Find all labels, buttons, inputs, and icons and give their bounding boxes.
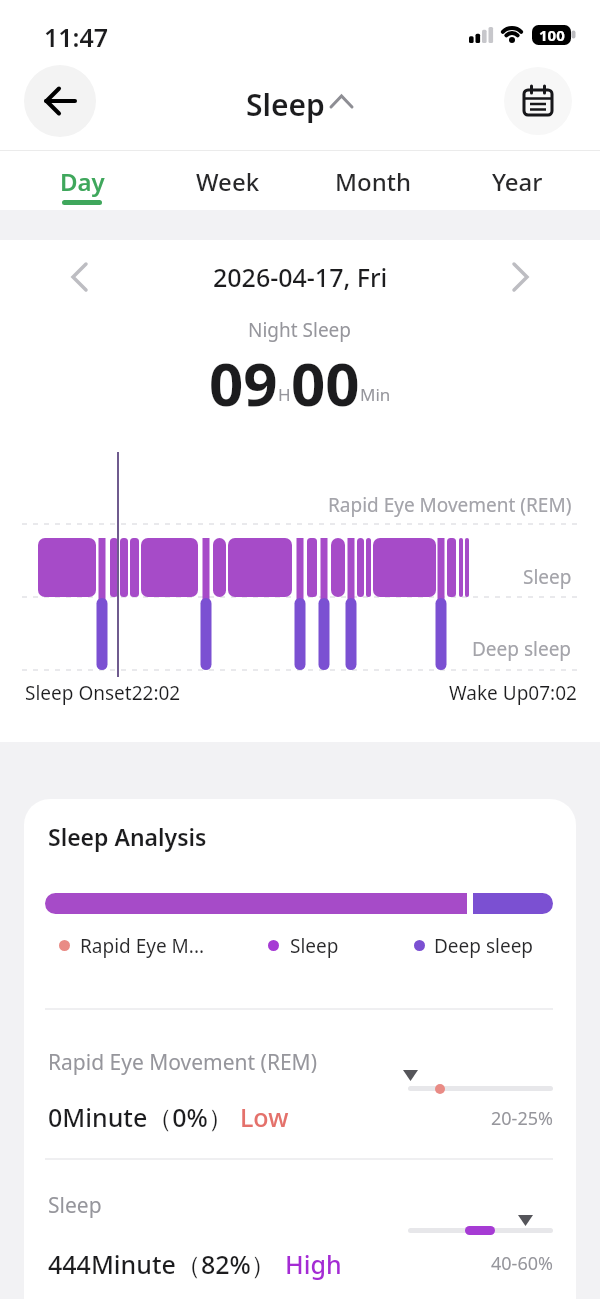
staticText: High xyxy=(285,1247,342,1281)
button[interactable]: Day xyxy=(10,152,155,210)
staticText: Sleep xyxy=(246,84,325,125)
staticText: Day xyxy=(60,165,105,198)
staticText: 40-60% xyxy=(491,1251,553,1276)
button[interactable]: Year xyxy=(445,152,590,210)
staticText: Sleep Onset22:02 xyxy=(25,680,181,706)
staticText: Sleep xyxy=(523,564,572,590)
button[interactable] xyxy=(24,65,96,137)
staticText: Rapid Eye Movement (REM) xyxy=(48,1048,317,1077)
staticText: 444Minute（82%） xyxy=(48,1247,276,1281)
staticText: 0Minute（0%） xyxy=(48,1100,233,1134)
staticText: Week xyxy=(196,165,260,198)
staticText: Rapid Eye M... xyxy=(80,933,205,959)
staticText: Sleep Analysis xyxy=(48,821,207,852)
staticText: Night Sleep xyxy=(248,317,352,343)
staticText: Deep sleep xyxy=(472,636,572,662)
staticText: 20-25% xyxy=(491,1106,553,1131)
button[interactable]: Week xyxy=(155,152,300,210)
staticText: 100 xyxy=(539,25,565,45)
staticText: Deep sleep xyxy=(434,933,534,959)
staticText: H xyxy=(278,383,291,406)
staticText: Rapid Eye Movement (REM) xyxy=(328,492,572,518)
staticText: Sleep xyxy=(290,933,339,959)
button[interactable]: Month xyxy=(300,152,445,210)
button[interactable] xyxy=(504,67,572,135)
staticText: Low xyxy=(240,1100,289,1134)
staticText: 09 xyxy=(209,342,278,416)
staticText: 11:47 xyxy=(44,20,109,54)
staticText: Month xyxy=(335,165,411,198)
staticText: Sleep xyxy=(48,1191,102,1220)
staticText: 2026-04-17, Fri xyxy=(213,260,388,294)
staticText: 00 xyxy=(291,342,360,416)
staticText: Year xyxy=(492,165,543,198)
staticText: Min xyxy=(360,383,391,406)
staticText: Wake Up07:02 xyxy=(449,680,577,706)
